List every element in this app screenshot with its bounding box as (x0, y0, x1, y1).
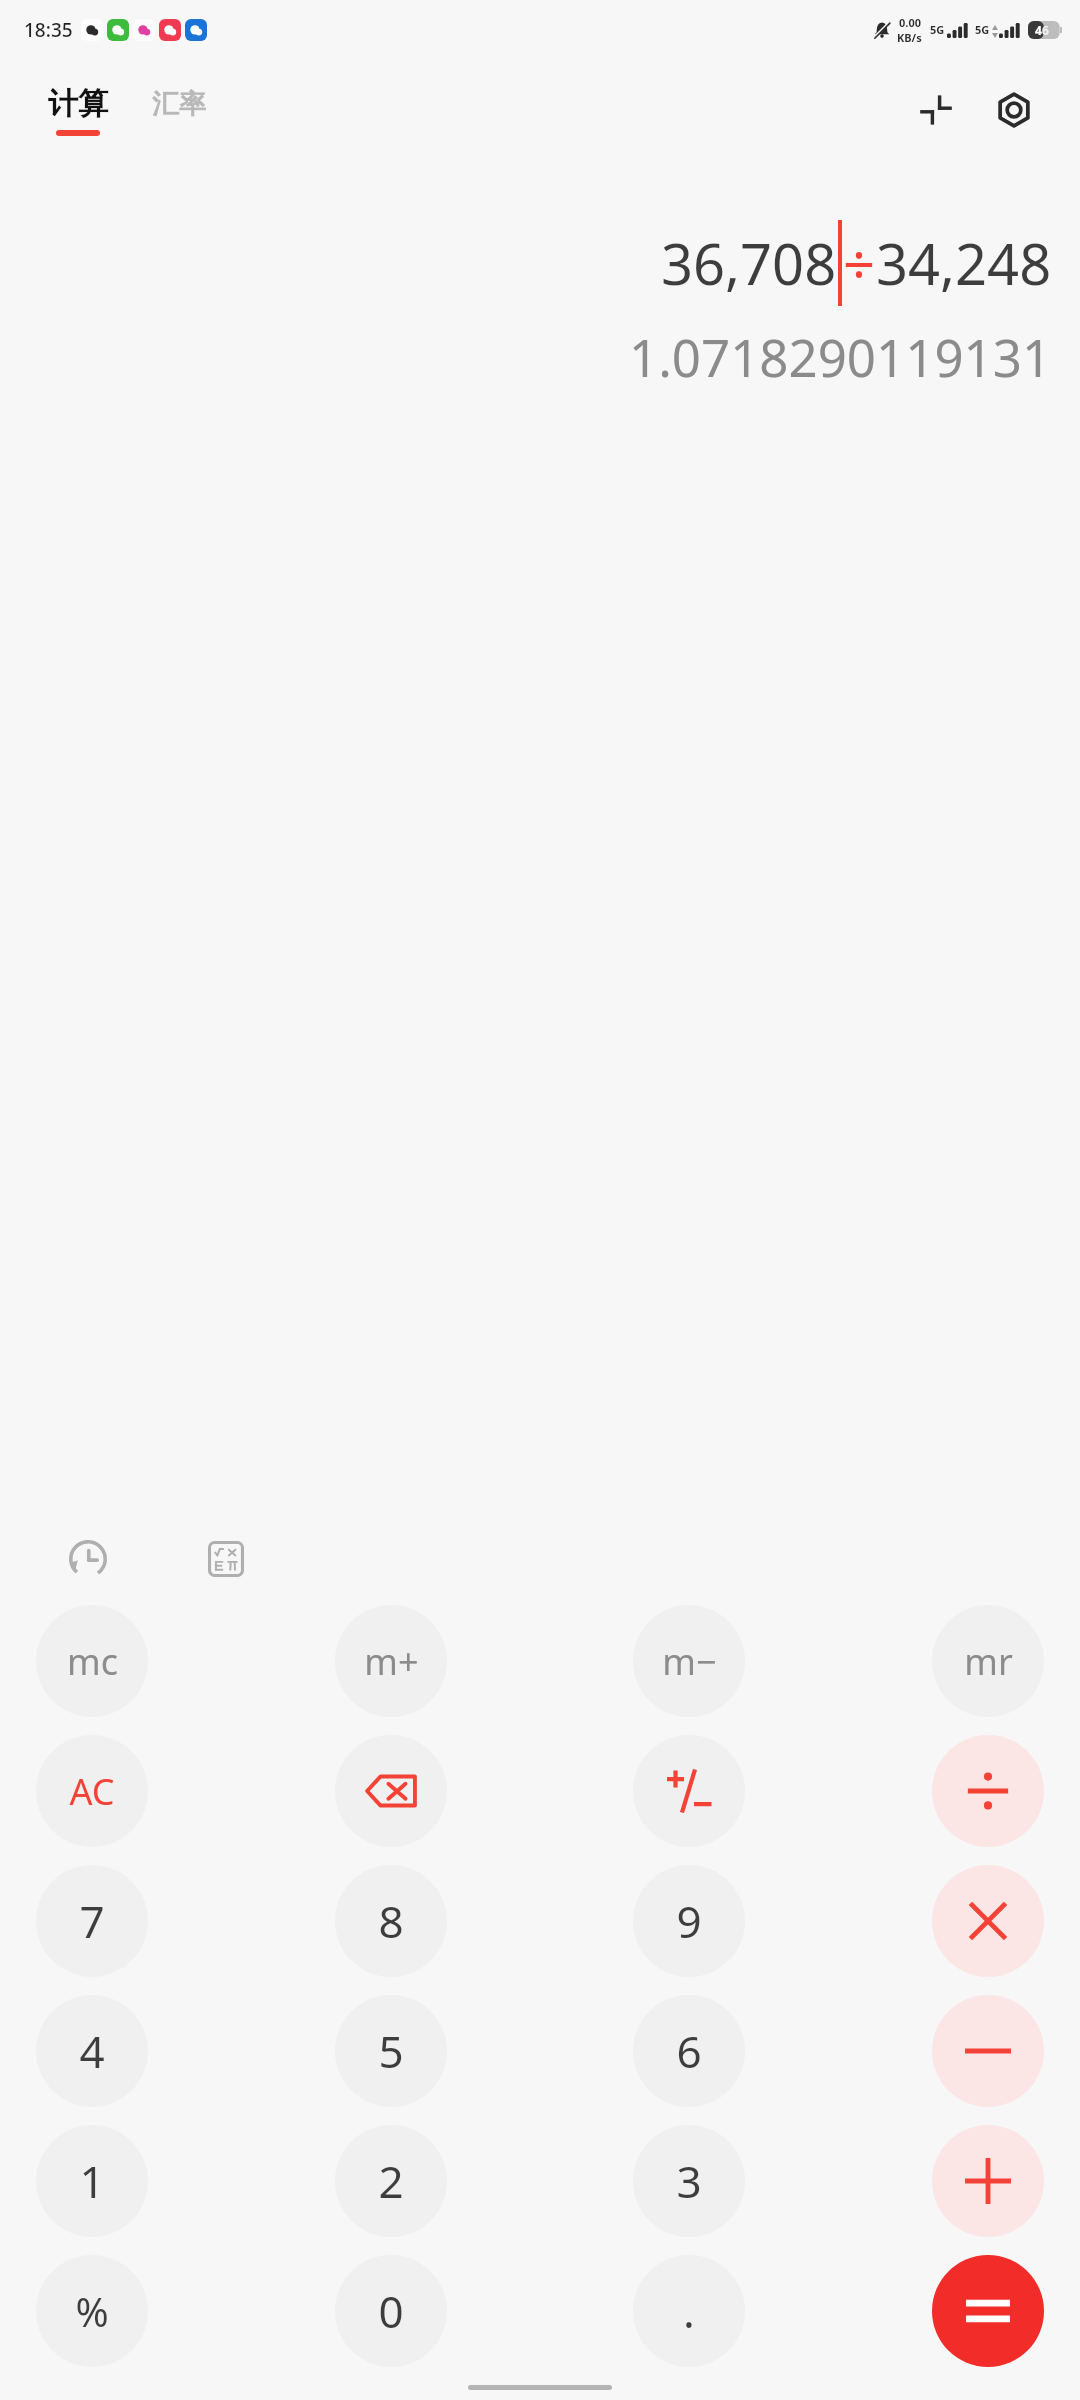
staticText: 6 (676, 2021, 702, 2081)
staticText: % (75, 2284, 109, 2338)
button[interactable]: 2 (335, 2125, 447, 2237)
staticText: m− (662, 1637, 717, 1686)
staticText: 5 (378, 2021, 404, 2081)
button[interactable]: mc (36, 1605, 148, 1717)
button[interactable]: History (56, 1527, 120, 1591)
button[interactable]: 计算 (46, 85, 110, 136)
button[interactable]: m− (633, 1605, 745, 1717)
button[interactable]: 8 (335, 1865, 447, 1977)
staticText: 34,248 (876, 225, 1052, 301)
staticText: 18:35 (24, 17, 73, 43)
staticText: ÷ (843, 225, 876, 301)
staticText: 1 (79, 2151, 105, 2211)
button[interactable]: Backspace (335, 1735, 447, 1847)
staticText: 5G (930, 22, 945, 37)
button[interactable]: 0 (335, 2255, 447, 2367)
staticText: 4 (79, 2021, 105, 2081)
staticText: 5G (975, 22, 990, 37)
button[interactable]: . (633, 2255, 745, 2367)
staticText: mc (67, 1637, 118, 1686)
staticText: 8 (378, 1891, 404, 1951)
button[interactable]: 9 (633, 1865, 745, 1977)
staticText: 1.0718290119131 (629, 322, 1052, 391)
button[interactable]: Divide (932, 1735, 1044, 1847)
button[interactable]: Plus (932, 2125, 1044, 2237)
button[interactable]: Minus (932, 1995, 1044, 2107)
button[interactable]: Settings (988, 84, 1040, 136)
staticText: 7 (79, 1891, 105, 1951)
staticText: . (683, 2281, 695, 2341)
button[interactable]: Multiply (932, 1865, 1044, 1977)
button[interactable]: 6 (633, 1995, 745, 2107)
button[interactable]: 1 (36, 2125, 148, 2237)
staticText: 汇率 (152, 87, 206, 121)
button[interactable]: 5 (335, 1995, 447, 2107)
button[interactable]: Equals (932, 2255, 1044, 2367)
staticText: 36,708 (661, 225, 837, 301)
staticText: 9 (676, 1891, 702, 1951)
button[interactable]: mr (932, 1605, 1044, 1717)
button[interactable]: AC (36, 1735, 148, 1847)
button[interactable]: 3 (633, 2125, 745, 2237)
staticText: 4 (1035, 22, 1042, 38)
staticText: m+ (364, 1637, 419, 1686)
staticText: 6 (1042, 22, 1049, 38)
button[interactable]: m+ (335, 1605, 447, 1717)
staticText: 3 (676, 2151, 702, 2211)
button[interactable]: Scientific (194, 1527, 258, 1591)
button[interactable]: Plus minus (633, 1735, 745, 1847)
button[interactable]: 4 (36, 1995, 148, 2107)
button[interactable]: % (36, 2255, 148, 2367)
staticText: 0.00 (899, 15, 921, 30)
button[interactable]: Collapse (910, 84, 962, 136)
staticText: AC (69, 1767, 115, 1816)
button[interactable]: 汇率 (152, 87, 206, 134)
button[interactable]: 7 (36, 1865, 148, 1977)
staticText: 2 (378, 2151, 404, 2211)
staticText: KB/s (897, 30, 922, 45)
staticText: 0 (378, 2281, 404, 2341)
staticText: 计算 (48, 85, 108, 123)
staticText: mr (964, 1637, 1013, 1686)
